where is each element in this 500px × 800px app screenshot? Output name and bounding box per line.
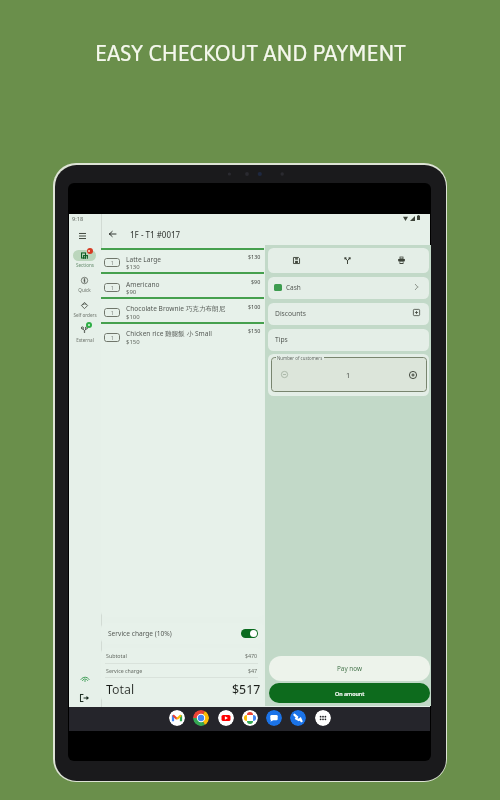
button[interactable] [268,329,429,351]
staticText: $90 [126,288,137,296]
staticText: Discounts [275,309,306,318]
button[interactable]: Pay now [269,656,430,681]
staticText: $100 [248,303,261,310]
staticText: On amount [335,690,365,697]
staticText: $150 [248,327,261,334]
staticText: 1 [111,310,114,316]
button[interactable] [101,271,264,296]
button[interactable] [69,323,100,346]
button[interactable] [69,249,100,272]
button[interactable]: Phone [290,710,306,726]
staticText: Quick [78,287,91,293]
staticText: EASY CHECKOUT AND PAYMENT [95,41,406,66]
button[interactable] [101,246,264,271]
staticText: $470 [245,652,258,659]
staticText: $47 [248,667,258,674]
button[interactable]: Messages [266,710,282,726]
staticText: Subtotal [106,652,127,659]
staticText: Service charge [106,667,143,674]
staticText: External [76,337,94,343]
button[interactable] [101,295,264,320]
button[interactable]: Chrome [193,710,209,726]
button[interactable]: YouTube [218,710,234,726]
button[interactable]: Gmail [169,710,185,726]
button[interactable] [271,357,427,392]
staticText: $517 [232,681,261,698]
staticText: 1 [111,335,114,341]
button[interactable] [101,320,264,345]
button[interactable]: Log out [77,690,92,705]
button[interactable]: All apps [315,710,331,726]
staticText: Latte Large [126,255,161,264]
button[interactable] [69,298,100,321]
staticText: Tips [275,335,288,344]
staticText: Cash [286,283,301,292]
staticText: 1 [111,285,114,291]
button[interactable]: On amount [269,683,430,703]
staticText: Chocolate Brownie 巧克力布朗尼 [126,304,226,313]
button[interactable]: Menu [75,228,90,243]
button[interactable]: Back [104,226,120,242]
staticText: Self orders [73,312,97,318]
staticText: 1 [346,370,351,380]
staticText: $130 [248,253,261,260]
staticText: $100 [126,313,140,321]
button[interactable]: Decrease customers [278,368,291,381]
staticText: Sections [76,262,94,268]
staticText: 1F - T1 #0017 [130,229,181,240]
staticText: 1 [111,260,114,266]
button[interactable]: Print [387,248,415,273]
button[interactable] [268,303,429,325]
button[interactable] [69,273,100,296]
button[interactable]: Increase customers [406,368,419,381]
staticText: 9:18 [72,215,84,223]
button[interactable]: Split bill [333,248,361,273]
button[interactable]: Save [282,248,310,273]
staticText: Total [106,681,135,698]
button[interactable]: Photos [242,710,258,726]
staticText: Chicken rice 雞腿飯 小 Small [126,329,212,338]
staticText: Service charge (10%) [108,629,172,638]
staticText: Number of customers [277,355,323,360]
staticText: Pay now [337,664,363,673]
button[interactable] [268,277,429,299]
staticText: $130 [126,263,140,271]
button[interactable]: Service charge (10%) [101,623,264,644]
staticText: $90 [251,278,261,285]
staticText: Americano [126,280,160,289]
staticText: $150 [126,338,140,346]
